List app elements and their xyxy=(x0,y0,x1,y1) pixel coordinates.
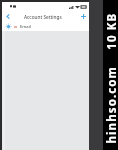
button[interactable]: Add xyxy=(77,11,89,22)
button[interactable]: Email xyxy=(2,22,89,31)
button[interactable]: Back xyxy=(2,11,15,22)
staticText: Email xyxy=(20,24,31,30)
staticText: Account Settings xyxy=(24,14,62,20)
staticText: hinhso.com 10 KB xyxy=(103,12,118,143)
